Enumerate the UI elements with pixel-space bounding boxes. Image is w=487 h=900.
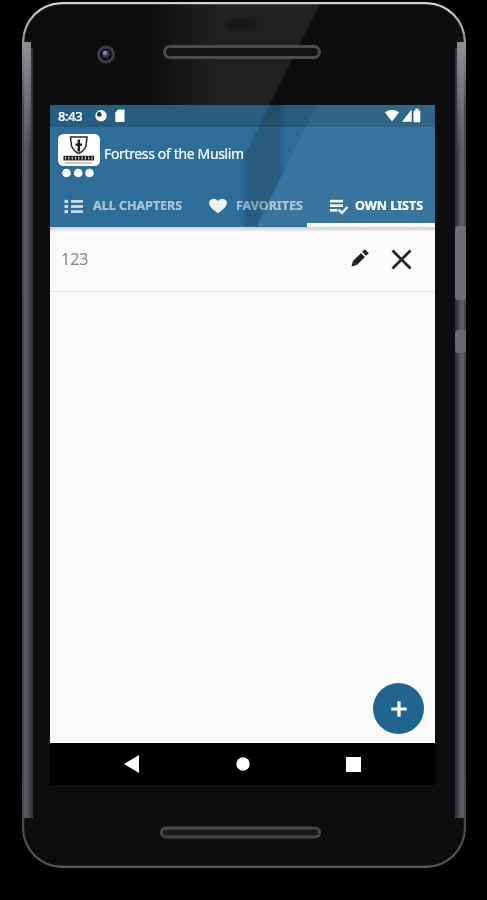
staticText: Fortress of the Muslim: [104, 144, 244, 163]
button[interactable]: [228, 749, 258, 779]
staticText: 123: [61, 248, 89, 270]
staticText: FAVORITES: [236, 197, 303, 214]
button[interactable]: OWN LISTS: [307, 184, 435, 227]
button[interactable]: [116, 749, 146, 779]
staticText: ALL CHAPTERS: [93, 197, 183, 214]
staticText: OWN LISTS: [355, 197, 424, 214]
button[interactable]: [346, 246, 372, 272]
button[interactable]: [338, 749, 368, 779]
button[interactable]: ALL CHAPTERS: [50, 184, 179, 227]
staticText: 8:43: [58, 107, 83, 125]
button[interactable]: FAVORITES: [179, 184, 307, 227]
button[interactable]: [388, 246, 414, 272]
button[interactable]: [373, 683, 424, 734]
button[interactable]: 123: [50, 227, 435, 291]
